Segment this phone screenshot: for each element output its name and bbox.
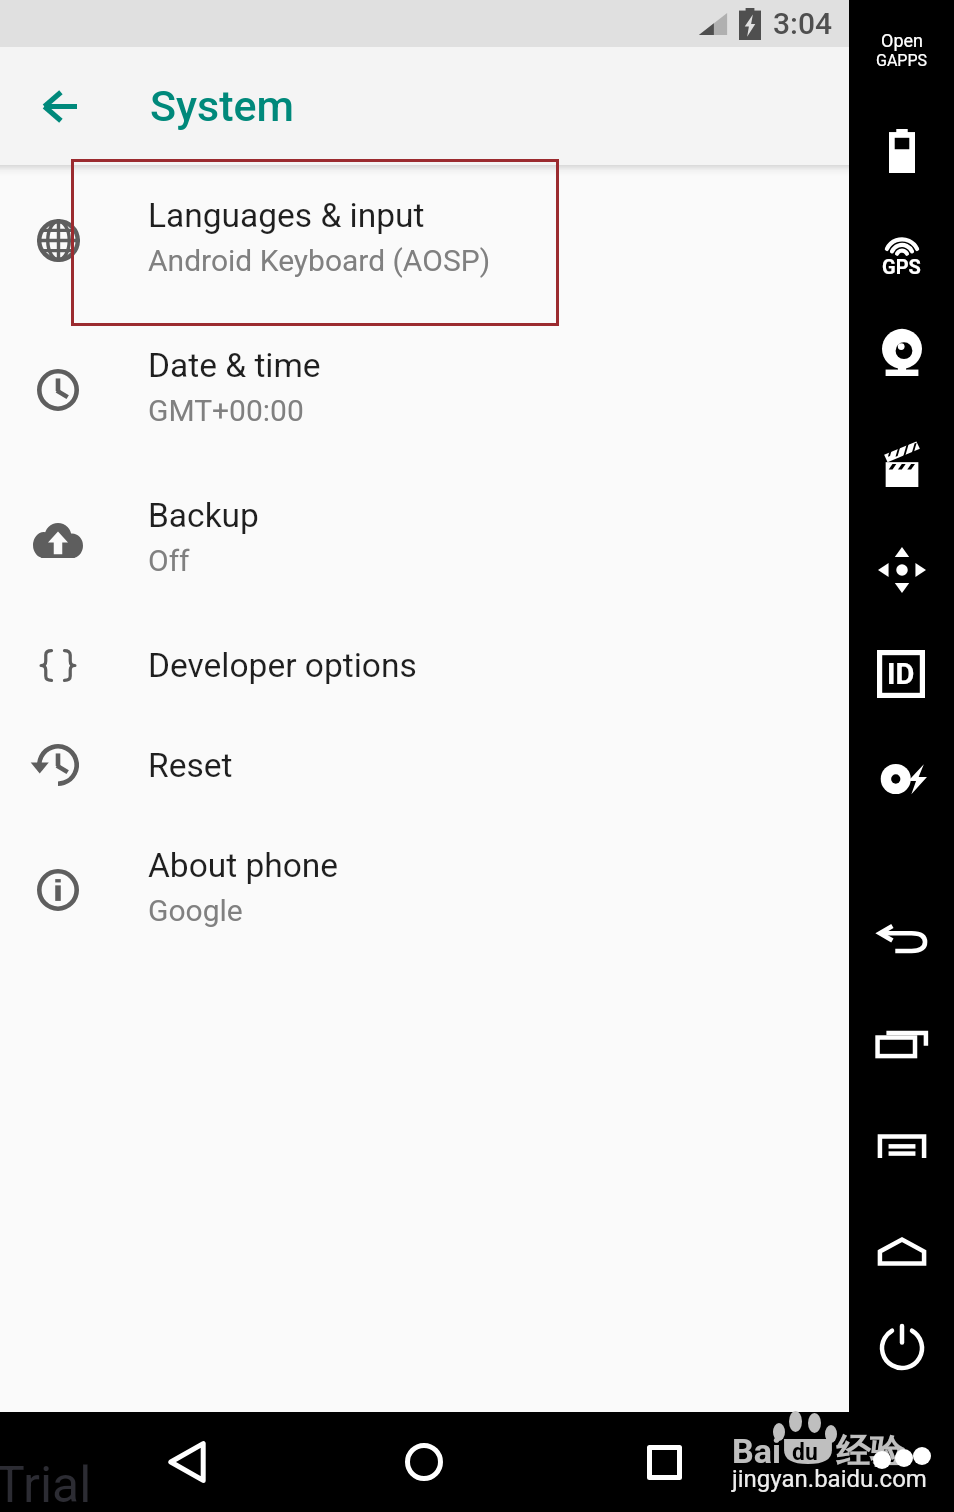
staticText: GAPPS [876, 51, 928, 70]
button[interactable]: Power [849, 1310, 954, 1386]
staticText: Google [148, 893, 243, 928]
button[interactable]: Menu [849, 1109, 954, 1185]
button[interactable]: Record video [849, 426, 954, 502]
staticText: Backup [148, 496, 259, 535]
staticText: Trial [0, 1456, 92, 1512]
button[interactable]: Rotate [849, 1004, 954, 1080]
staticText: Developer options [148, 646, 417, 685]
staticText: du [792, 1439, 818, 1466]
button[interactable]: Navigate up [0, 47, 118, 165]
button[interactable]: Back [142, 1417, 232, 1507]
staticText: Bai [732, 1431, 781, 1471]
button[interactable]: Reset [0, 715, 849, 815]
button[interactable]: About phone [0, 815, 849, 965]
staticText: ID [887, 657, 915, 691]
button[interactable]: Directional pad [849, 532, 954, 608]
button[interactable]: Developer options [0, 615, 849, 715]
staticText: 3:04 [773, 6, 833, 41]
button[interactable]: GPS [849, 208, 954, 284]
staticText: Off [148, 543, 190, 578]
button[interactable]: Backup [0, 465, 849, 615]
staticText: Reset [148, 746, 233, 785]
button[interactable]: Back [849, 901, 954, 977]
staticText: Open [881, 30, 923, 51]
button[interactable]: Home [379, 1417, 469, 1507]
button[interactable]: Battery [849, 113, 954, 189]
button[interactable]: Home [849, 1213, 954, 1289]
staticText: jingyan.baidu.com [732, 1465, 927, 1493]
button[interactable]: Screenshot [849, 741, 954, 817]
staticText: System [150, 81, 295, 131]
button[interactable]: Webcam [849, 315, 954, 391]
staticText: Date & time [148, 346, 321, 385]
staticText: GPS [882, 255, 921, 278]
button[interactable]: Languages & input [0, 165, 849, 315]
staticText: About phone [148, 846, 339, 885]
button[interactable]: Date & time [0, 315, 849, 465]
staticText: Languages & input [148, 196, 425, 235]
staticText: GMT+00:00 [148, 393, 304, 428]
button[interactable]: Recent apps [619, 1417, 709, 1507]
staticText: Android Keyboard (AOSP) [148, 243, 491, 278]
staticText: 经验 [836, 1430, 904, 1473]
